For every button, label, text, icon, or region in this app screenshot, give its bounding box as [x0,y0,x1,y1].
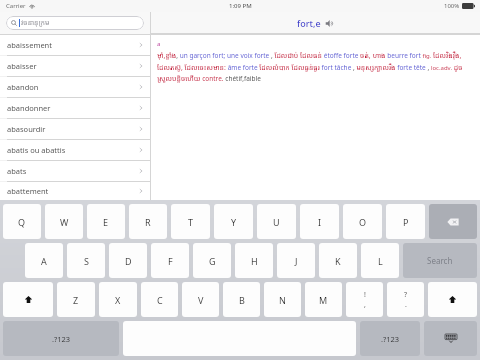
staticText: abats [7,166,138,176]
button[interactable]: C [141,282,178,317]
button[interactable]: K [319,243,357,278]
button[interactable]: V [182,282,219,317]
staticText: fort,e [297,17,321,29]
staticText: V [198,294,204,306]
staticText: F [168,255,173,267]
button[interactable]: Pronounce [324,18,334,28]
staticText: S [84,255,89,267]
staticText: A [41,255,47,267]
button[interactable]: Shift [3,282,53,317]
button[interactable]: abaissement [0,35,150,55]
staticText: N [279,294,286,306]
staticText: abasourdir [7,124,138,134]
staticText: Q [18,216,26,228]
staticText: Y [231,216,237,228]
button[interactable]: fort,e [297,17,334,29]
button[interactable]: R [129,204,167,239]
staticText: K [335,255,341,267]
staticText: U [273,216,280,228]
staticText: ម៉ាំ,ខ្លាំង, un garçon fort; une voix fo… [157,51,474,83]
staticText: E [103,216,109,228]
button[interactable]: T [171,204,210,239]
button[interactable]: abaisser [0,56,150,76]
staticText: abattement [7,186,138,196]
staticText: M [319,294,328,306]
button[interactable]: Q [3,204,41,239]
button[interactable]: .?123 [3,321,119,356]
staticText: D [125,255,132,267]
staticText: 100% [444,2,460,10]
button[interactable]: J [277,243,315,278]
button[interactable]: Backspace [429,204,477,239]
button[interactable]: Shift [428,282,477,317]
button[interactable]: abandonner [0,98,150,118]
button[interactable]: D [109,243,147,278]
staticText: C [157,294,163,306]
staticText: Search [427,255,453,266]
button[interactable]: S [67,243,105,278]
button[interactable]: E [87,204,125,239]
staticText: B [239,294,245,306]
button[interactable]: L [361,243,399,278]
staticText: T [188,216,194,228]
button[interactable]: W [45,204,83,239]
staticText: abandon [7,82,138,92]
staticText: P [403,216,409,228]
button[interactable]: វចនានុក្រម [6,16,144,30]
button[interactable]: abandon [0,77,150,97]
staticText: វចនានុក្រម [21,18,50,28]
button[interactable]: U [257,204,296,239]
button[interactable]: abasourdir [0,119,150,139]
staticText: L [378,255,383,267]
button[interactable]: N [264,282,301,317]
staticText: abaissement [7,40,138,50]
staticText: . [405,300,407,310]
staticText: O [359,216,367,228]
staticText: abaisser [7,61,138,71]
button[interactable]: ? [387,282,424,317]
staticText: .?123 [381,334,400,344]
button[interactable]: ! [346,282,383,317]
staticText: I [318,216,322,228]
button[interactable]: I [300,204,339,239]
button[interactable]: abats [0,161,150,181]
button[interactable]: F [151,243,189,278]
button[interactable]: .?123 [360,321,420,356]
button[interactable]: Hide keyboard [424,321,477,356]
staticText: G [209,255,216,267]
staticText: H [251,255,258,267]
staticText: W [60,216,69,228]
staticText: .?123 [52,334,71,344]
button[interactable]: X [99,282,137,317]
button[interactable]: Y [214,204,253,239]
staticText: ? [404,290,408,300]
staticText: Z [73,294,79,306]
staticText: 1:09 PM [229,2,252,10]
button[interactable]: G [193,243,231,278]
button[interactable]: B [223,282,260,317]
staticText: R [145,216,151,228]
staticText: J [295,255,298,267]
staticText: X [115,294,121,306]
staticText: Carrier [6,2,26,10]
staticText: abatis ou abattis [7,145,138,155]
staticText: ! [364,290,366,300]
button[interactable]: P [386,204,425,239]
staticText: abandonner [7,103,138,113]
button[interactable]: Search [403,243,477,278]
button[interactable]: abatis ou abattis [0,140,150,160]
button[interactable]: H [235,243,273,278]
button[interactable]: O [343,204,382,239]
button[interactable]: Z [57,282,95,317]
staticText: a [157,40,161,48]
button[interactable]: A [25,243,63,278]
button[interactable]: abattement [0,182,150,200]
staticText: , [364,300,366,310]
button[interactable]: M [305,282,342,317]
